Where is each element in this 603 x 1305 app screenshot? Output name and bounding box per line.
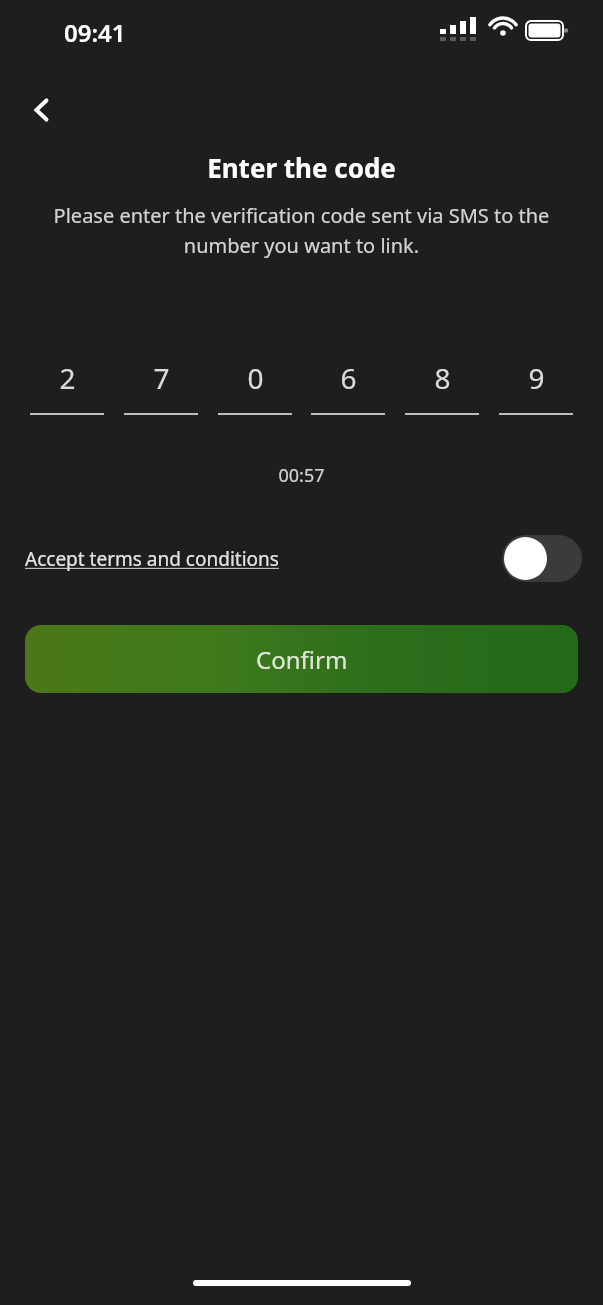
button[interactable]: Accept terms and conditions toggle (502, 535, 582, 582)
staticText: 8 (434, 359, 451, 397)
staticText: Accept terms and conditions (25, 546, 279, 572)
button[interactable]: 2 (30, 359, 104, 415)
staticText: 00:57 (0, 463, 603, 488)
staticText: 9 (528, 359, 545, 397)
staticText: 2 (59, 359, 76, 397)
staticText: 6 (340, 359, 357, 397)
staticText: Please enter the verification code sent … (30, 202, 573, 259)
staticText: Enter the code (0, 150, 603, 185)
staticText: 0 (247, 359, 264, 397)
button[interactable]: 0 (218, 359, 292, 415)
button[interactable]: Accept terms and conditions (25, 546, 279, 572)
button[interactable]: 6 (311, 359, 385, 415)
staticText: 7 (153, 359, 170, 397)
staticText: 09:41 (64, 16, 126, 49)
button[interactable]: 9 (499, 359, 573, 415)
button[interactable]: 7 (124, 359, 198, 415)
button[interactable]: Confirm (25, 625, 578, 693)
button[interactable]: Back (14, 82, 70, 138)
button[interactable]: 8 (405, 359, 479, 415)
staticText: Confirm (256, 643, 348, 676)
